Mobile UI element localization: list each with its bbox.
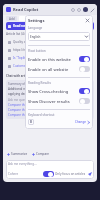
staticText: Ask me everything... (8, 162, 37, 166)
staticText: Ask me questions (8, 98, 33, 102)
staticText: applying deep focus techniques daily. (8, 92, 61, 96)
button[interactable] (19, 16, 33, 21)
button[interactable]: Account (83, 7, 88, 12)
staticText: Quality of sleep study (13, 40, 92, 44)
button[interactable]: English (28, 32, 90, 41)
staticText: https://news.example (13, 48, 92, 52)
button[interactable]: Compare (31, 150, 51, 158)
staticText: Summary of the 4 selected articles (8, 82, 57, 86)
button[interactable]: Enabled (79, 88, 90, 94)
button[interactable]: Ask me everything... (6, 160, 94, 179)
staticText: Customer retention note (13, 64, 92, 68)
staticText: Only focus on articles (55, 172, 86, 176)
staticText: Read now (13, 24, 92, 28)
button[interactable]: Customer retention note (6, 62, 94, 70)
button[interactable]: Settings (77, 8, 81, 12)
staticText: Cohere (8, 172, 19, 176)
button[interactable]: Close (85, 18, 90, 23)
button[interactable]: Send (88, 172, 92, 176)
staticText: Compare the two articles (8, 103, 44, 107)
staticText: Summarize (11, 152, 28, 156)
staticText: Show Discover results (28, 99, 79, 104)
button[interactable]: Enabled (79, 56, 90, 62)
staticText: Compare the key findings (8, 108, 45, 112)
staticText: B (30, 120, 32, 124)
button[interactable]: Enable on this website (28, 54, 90, 64)
staticText: Compare the text of 1-2 and 3 within 500… (8, 113, 75, 117)
staticText: Enable on all website (28, 67, 79, 72)
button[interactable]: Disabled (79, 98, 90, 104)
button[interactable]: Enable on all website (28, 64, 90, 74)
staticText: Chat with articles (6, 74, 32, 78)
button[interactable]: Help (71, 8, 75, 12)
staticText: English (30, 35, 41, 39)
staticText: Article list (4 items) (6, 32, 34, 36)
button[interactable]: Summarize (6, 150, 29, 158)
staticText: Show Cross-checking results (28, 89, 79, 94)
staticText: Keyboard shortcut (28, 113, 55, 117)
button[interactable]: Is "Toplit" worth it? (6, 54, 94, 62)
staticText: Language (28, 26, 43, 30)
button[interactable]: Show Discover results (28, 96, 90, 106)
button[interactable]: Expand (90, 8, 94, 12)
staticText: Enable on this website (28, 57, 79, 62)
button[interactable]: Change (75, 120, 90, 124)
button[interactable]: https://news.example (6, 46, 94, 54)
button[interactable]: Enabled (43, 171, 54, 177)
staticText: Is "Toplit" worth it? (13, 56, 92, 60)
staticText: Additional notes about sleep quality and (8, 87, 65, 91)
button[interactable]: Disabled (79, 66, 90, 72)
staticText: Read Copilot (13, 7, 39, 12)
staticText: Change (75, 120, 86, 124)
button[interactable]: Quality of sleep study (6, 38, 94, 46)
button[interactable]: Add (6, 16, 17, 21)
staticText: Reading Results (28, 81, 51, 85)
button[interactable]: Read now (6, 22, 94, 30)
button[interactable]: Show Cross-checking results (28, 86, 90, 96)
staticText: Float button (28, 49, 46, 53)
staticText: Compare (36, 152, 50, 156)
button[interactable]: Summary of the 4 selected articles (6, 80, 94, 119)
staticText: Settings (28, 18, 45, 23)
staticText: Add (9, 17, 15, 21)
